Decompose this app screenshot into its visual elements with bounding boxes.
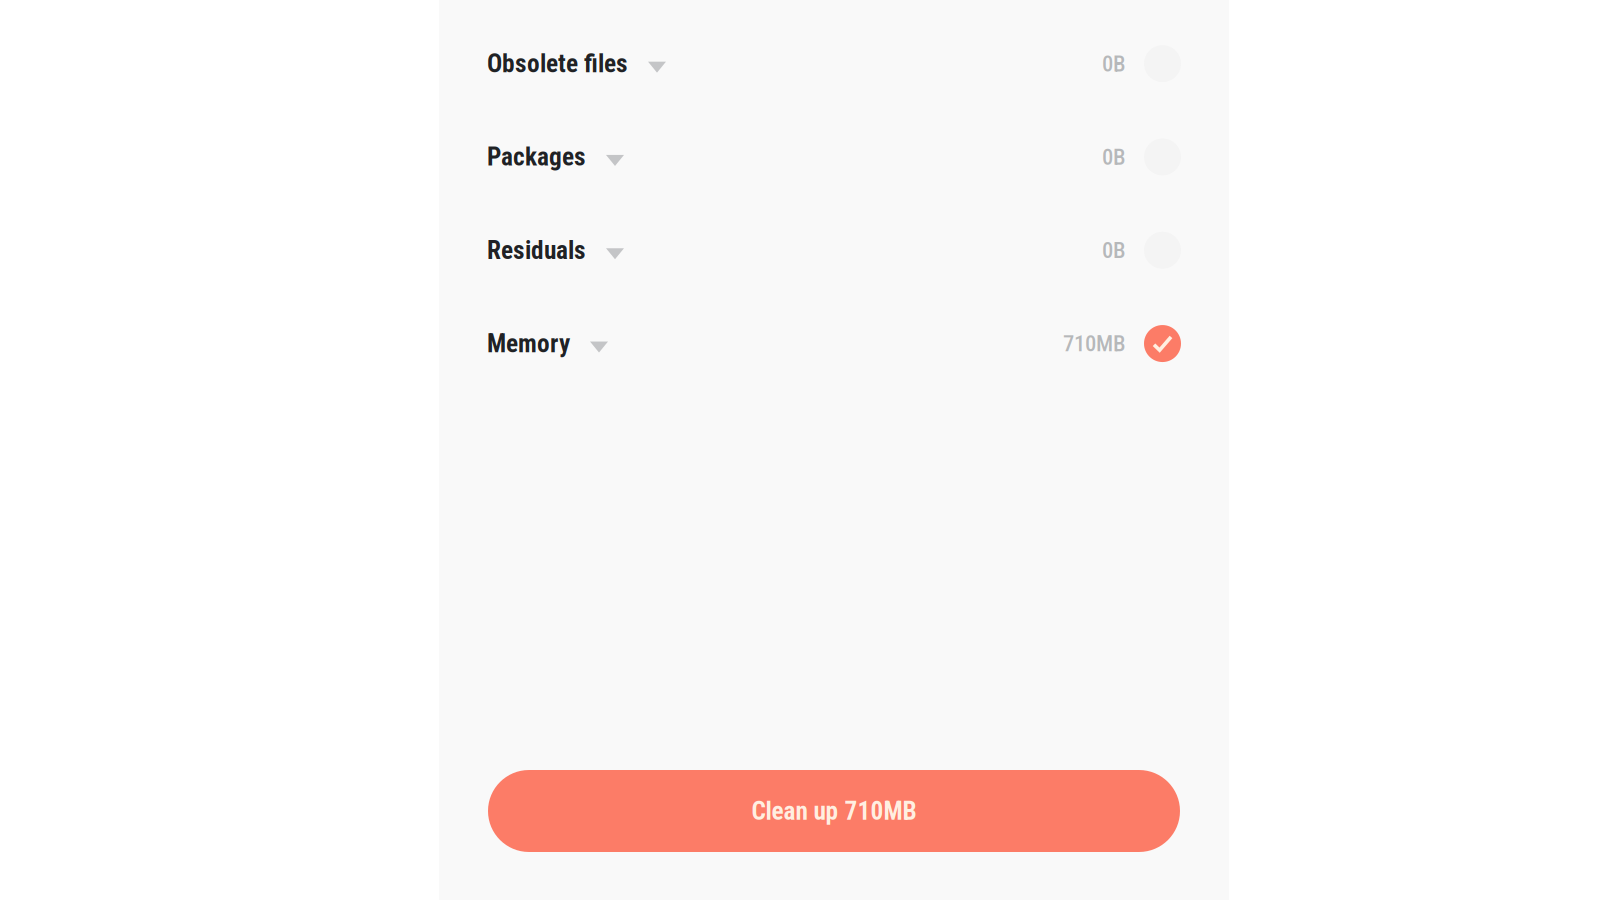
button[interactable]: Residuals (439, 204, 1229, 297)
staticText: 710MB (1063, 330, 1126, 357)
button[interactable]: Packages (439, 110, 1229, 204)
staticText: Memory (487, 329, 570, 358)
staticText: Residuals (487, 235, 586, 265)
staticText: 0B (1102, 144, 1126, 170)
button[interactable]: Memory (439, 297, 1229, 390)
staticText: 0B (1102, 50, 1126, 77)
button[interactable]: Clean up 710MB (488, 770, 1180, 852)
staticText: Clean up 710MB (751, 796, 916, 826)
staticText: Obsolete files (487, 49, 628, 78)
staticText: 0B (1102, 237, 1126, 264)
staticText: Packages (487, 142, 586, 172)
button[interactable]: Obsolete files (439, 17, 1229, 110)
